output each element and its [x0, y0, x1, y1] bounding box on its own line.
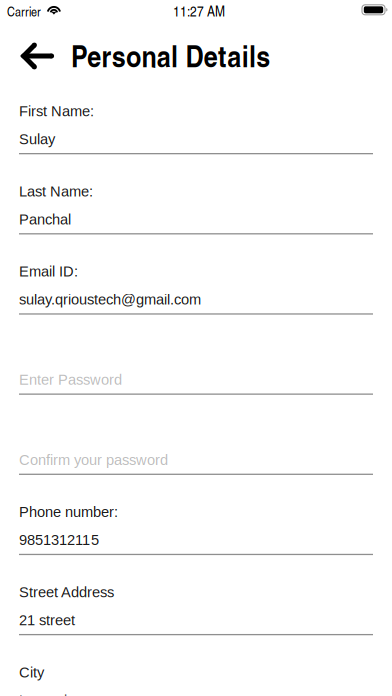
- button[interactable]: First Name:: [0, 90, 392, 170]
- staticText: Phone number:: [19, 504, 118, 520]
- staticText: sulay.qrioustech@gmail.com: [19, 291, 201, 308]
- staticText: 11:27 AM: [173, 0, 225, 20]
- staticText: 21 street: [19, 612, 75, 628]
- button[interactable]: Confirm your password: [0, 411, 392, 491]
- button[interactable]: City: [0, 651, 392, 696]
- staticText: Sulay: [19, 131, 55, 147]
- button[interactable]: Last Name:: [0, 170, 392, 250]
- staticText: City: [19, 664, 44, 680]
- button[interactable]: Phone number:: [0, 491, 392, 571]
- staticText: Carrier: [7, 2, 41, 20]
- button[interactable]: Street Address: [0, 571, 392, 651]
- staticText: Street Address: [19, 584, 114, 600]
- button[interactable]: Back: [14, 36, 59, 76]
- button[interactable]: Personal Details: [71, 35, 270, 75]
- staticText: Enter Password: [19, 371, 122, 388]
- staticText: 9851312115: [19, 532, 99, 548]
- button[interactable]: Email ID:: [0, 250, 392, 330]
- staticText: Confirm your password: [19, 452, 168, 468]
- staticText: Email ID:: [19, 263, 78, 280]
- staticText: Lorem ipsum: [19, 692, 102, 696]
- staticText: Personal Details: [71, 33, 270, 77]
- staticText: Panchal: [19, 211, 71, 228]
- button[interactable]: Enter Password: [0, 330, 392, 411]
- staticText: Last Name:: [19, 183, 93, 200]
- staticText: First Name:: [19, 103, 94, 119]
